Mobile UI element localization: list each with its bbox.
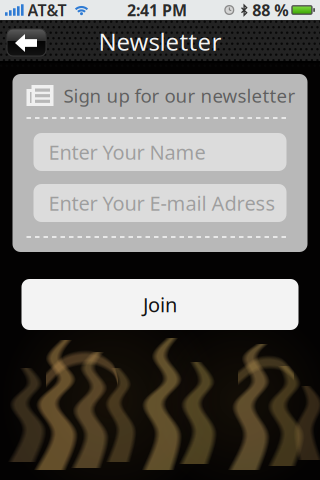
staticText: Join — [143, 291, 177, 318]
button[interactable]: Enter Your Name — [33, 133, 286, 171]
staticText: AT&T — [28, 0, 67, 21]
button[interactable]: Enter Your E-mail Adress — [33, 184, 286, 222]
staticText: Sign up for our newsletter — [63, 83, 295, 108]
staticText: 2:41 PM — [127, 0, 187, 21]
staticText: Newsletter — [98, 26, 221, 57]
button[interactable]: Join — [21, 279, 298, 330]
staticText: 88 % — [252, 0, 288, 21]
staticText: Enter Your E-mail Adress — [48, 190, 275, 216]
staticText: Enter Your Name — [48, 139, 205, 165]
button[interactable]: Back — [7, 29, 46, 56]
